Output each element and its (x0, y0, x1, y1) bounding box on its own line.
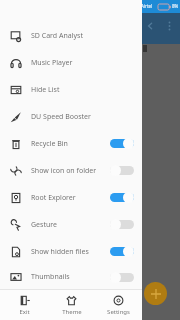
button[interactable] (110, 192, 134, 203)
staticText: Theme (62, 308, 82, 316)
button[interactable]: Thumbnails (0, 265, 142, 289)
staticText: Airtel (141, 3, 153, 9)
button[interactable] (110, 219, 134, 230)
button[interactable]: More options (168, 21, 171, 31)
button[interactable] (110, 246, 134, 257)
button[interactable]: Settings (95, 290, 142, 320)
button[interactable]: Recycle Bin (0, 130, 142, 157)
button[interactable]: Back (146, 22, 154, 30)
staticText: Gesture (31, 220, 57, 230)
staticText: Show icon on folder (31, 166, 97, 176)
staticText: Settings (107, 308, 130, 316)
button[interactable]: Gesture (0, 211, 142, 238)
staticText: 8% (172, 3, 179, 9)
button[interactable] (110, 138, 134, 149)
button[interactable] (110, 165, 134, 176)
button[interactable]: Root Explorer (0, 184, 142, 211)
button[interactable]: Hide List (0, 76, 142, 103)
button[interactable]: Theme (48, 290, 95, 320)
staticText: DU Speed Booster (31, 112, 91, 122)
staticText: Music Player (31, 58, 73, 68)
staticText: SD Card Analyst (31, 31, 83, 41)
button[interactable]: Music Player (0, 49, 142, 76)
button[interactable]: Show hidden files (0, 238, 142, 265)
staticText: Recycle Bin (31, 139, 68, 149)
staticText: Hide List (31, 85, 60, 95)
button[interactable]: Add (144, 282, 167, 305)
button[interactable]: DU Speed Booster (0, 103, 142, 130)
button[interactable]: Show icon on folder (0, 157, 142, 184)
staticText: Show hidden files (31, 247, 89, 257)
staticText: Thumbnails (31, 272, 70, 282)
button[interactable]: Exit (0, 290, 48, 320)
staticText: Root Explorer (31, 193, 76, 203)
button[interactable]: SD Card Analyst (0, 22, 142, 49)
staticText: Exit (19, 308, 30, 316)
button[interactable] (110, 272, 134, 283)
